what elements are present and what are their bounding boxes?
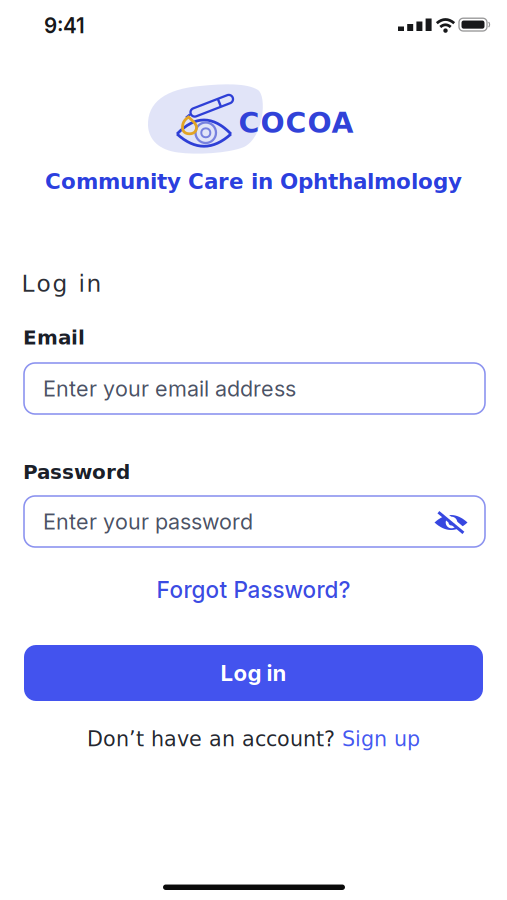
button[interactable]: Forgot Password?: [156, 576, 350, 603]
staticText: Don’t have an account?: [87, 727, 335, 751]
staticText: Sign up: [342, 727, 420, 751]
button[interactable]: Enter your password: [24, 496, 485, 547]
staticText: Log in: [220, 659, 286, 686]
staticText: Community Care in Ophthalmology: [45, 169, 462, 194]
staticText: Email: [23, 326, 85, 349]
staticText: Log in: [21, 270, 101, 297]
button[interactable]: Sign up: [342, 727, 420, 751]
staticText: Enter your password: [43, 508, 253, 535]
staticText: COCOA: [238, 106, 353, 140]
staticText: Password: [23, 460, 130, 484]
staticText: Enter your email address: [43, 375, 296, 402]
staticText: Forgot Password?: [156, 576, 350, 603]
button[interactable]: [430, 501, 474, 541]
button[interactable]: Log in: [24, 645, 483, 701]
staticText: 9:41: [44, 13, 85, 38]
button[interactable]: Enter your email address: [24, 363, 485, 414]
